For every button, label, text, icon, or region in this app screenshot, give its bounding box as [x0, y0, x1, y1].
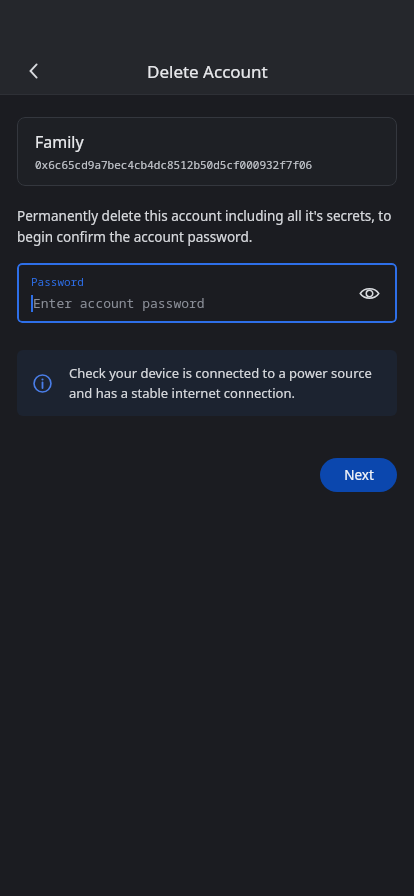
staticText: 0x6c65cd9a7bec4cb4dc8512b50d5cf000932f7f…	[35, 157, 313, 172]
staticText: Enter account password	[33, 294, 205, 312]
staticText: Next	[344, 466, 374, 484]
button[interactable]: Next	[320, 458, 397, 492]
button[interactable]: Check your device is connected to a powe…	[17, 350, 397, 416]
button[interactable]: Back	[14, 51, 54, 91]
staticText: Permanently delete this account includin…	[17, 207, 397, 246]
button[interactable]: Password	[17, 263, 397, 323]
button[interactable]: Family	[17, 117, 397, 186]
staticText: Password	[31, 274, 84, 289]
staticText: Family	[35, 131, 84, 153]
button[interactable]: Show password	[349, 273, 389, 313]
staticText: Check your device is connected to a powe…	[69, 364, 381, 402]
staticText: Delete Account	[147, 60, 268, 83]
